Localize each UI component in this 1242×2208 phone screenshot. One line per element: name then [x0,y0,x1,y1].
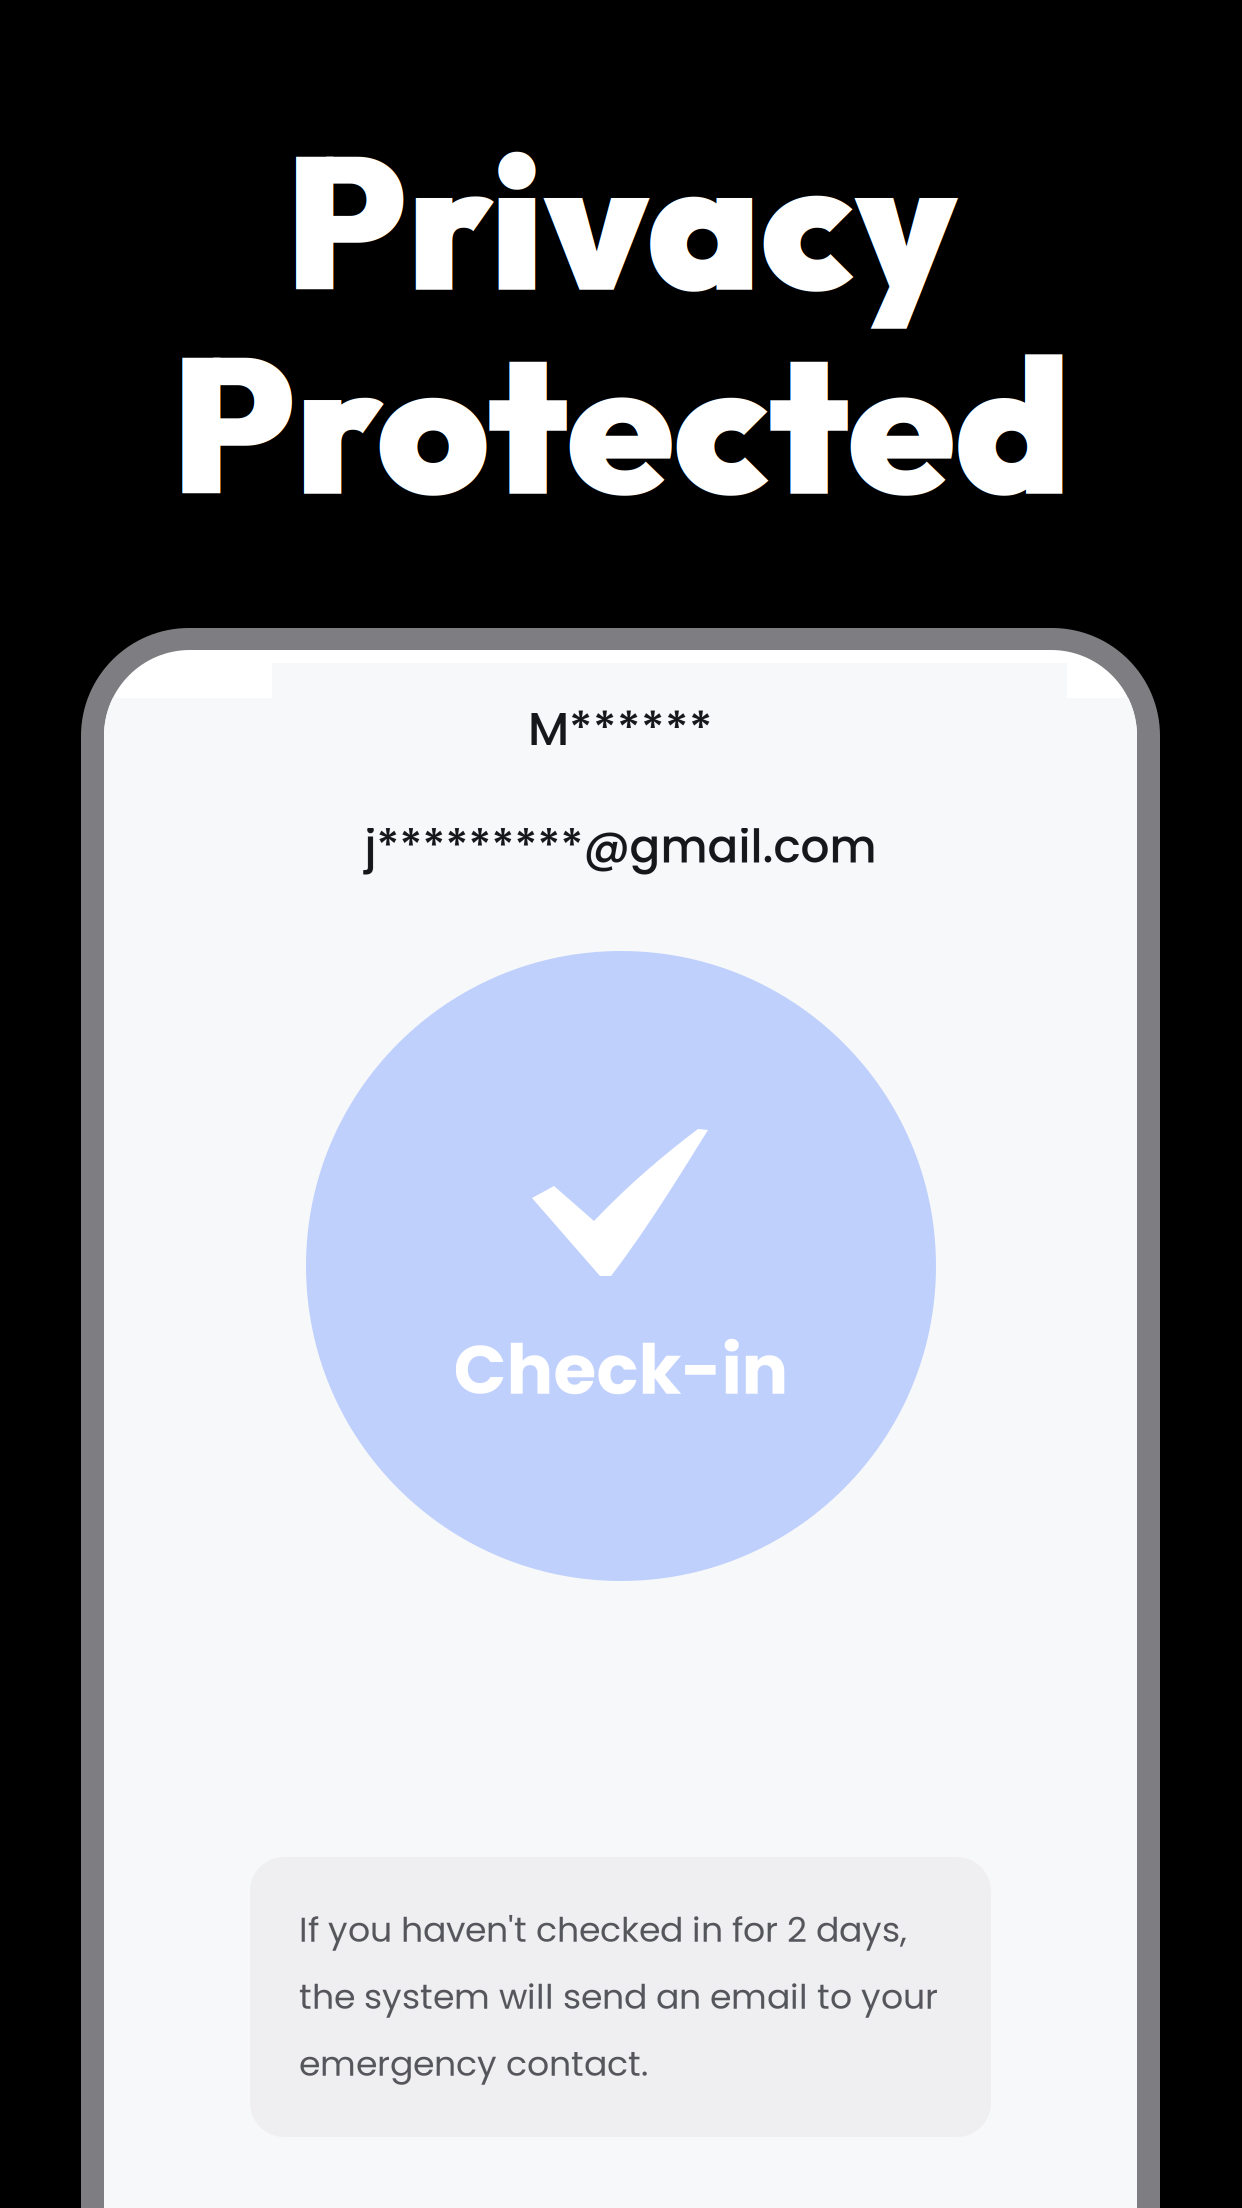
staticText: Protected [171,303,1071,543]
staticText: M****** [528,696,713,761]
staticText: the system will send an email to your [299,1972,938,2021]
button[interactable]: Check-in [306,951,936,1581]
staticText: Privacy [285,103,957,338]
staticText: emergency contact. [299,2039,648,2088]
staticText: Check-in [453,1321,788,1418]
staticText: If you haven't checked in for 2 days, [299,1905,907,1954]
staticText: j*********@gmail.com [364,815,876,878]
